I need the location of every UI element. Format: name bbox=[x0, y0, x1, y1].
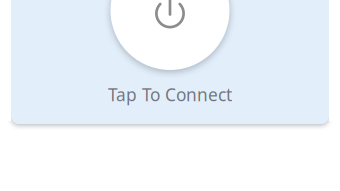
staticText: Tap To Connect bbox=[108, 83, 232, 106]
button[interactable]: Tap To Connect bbox=[70, 0, 270, 156]
